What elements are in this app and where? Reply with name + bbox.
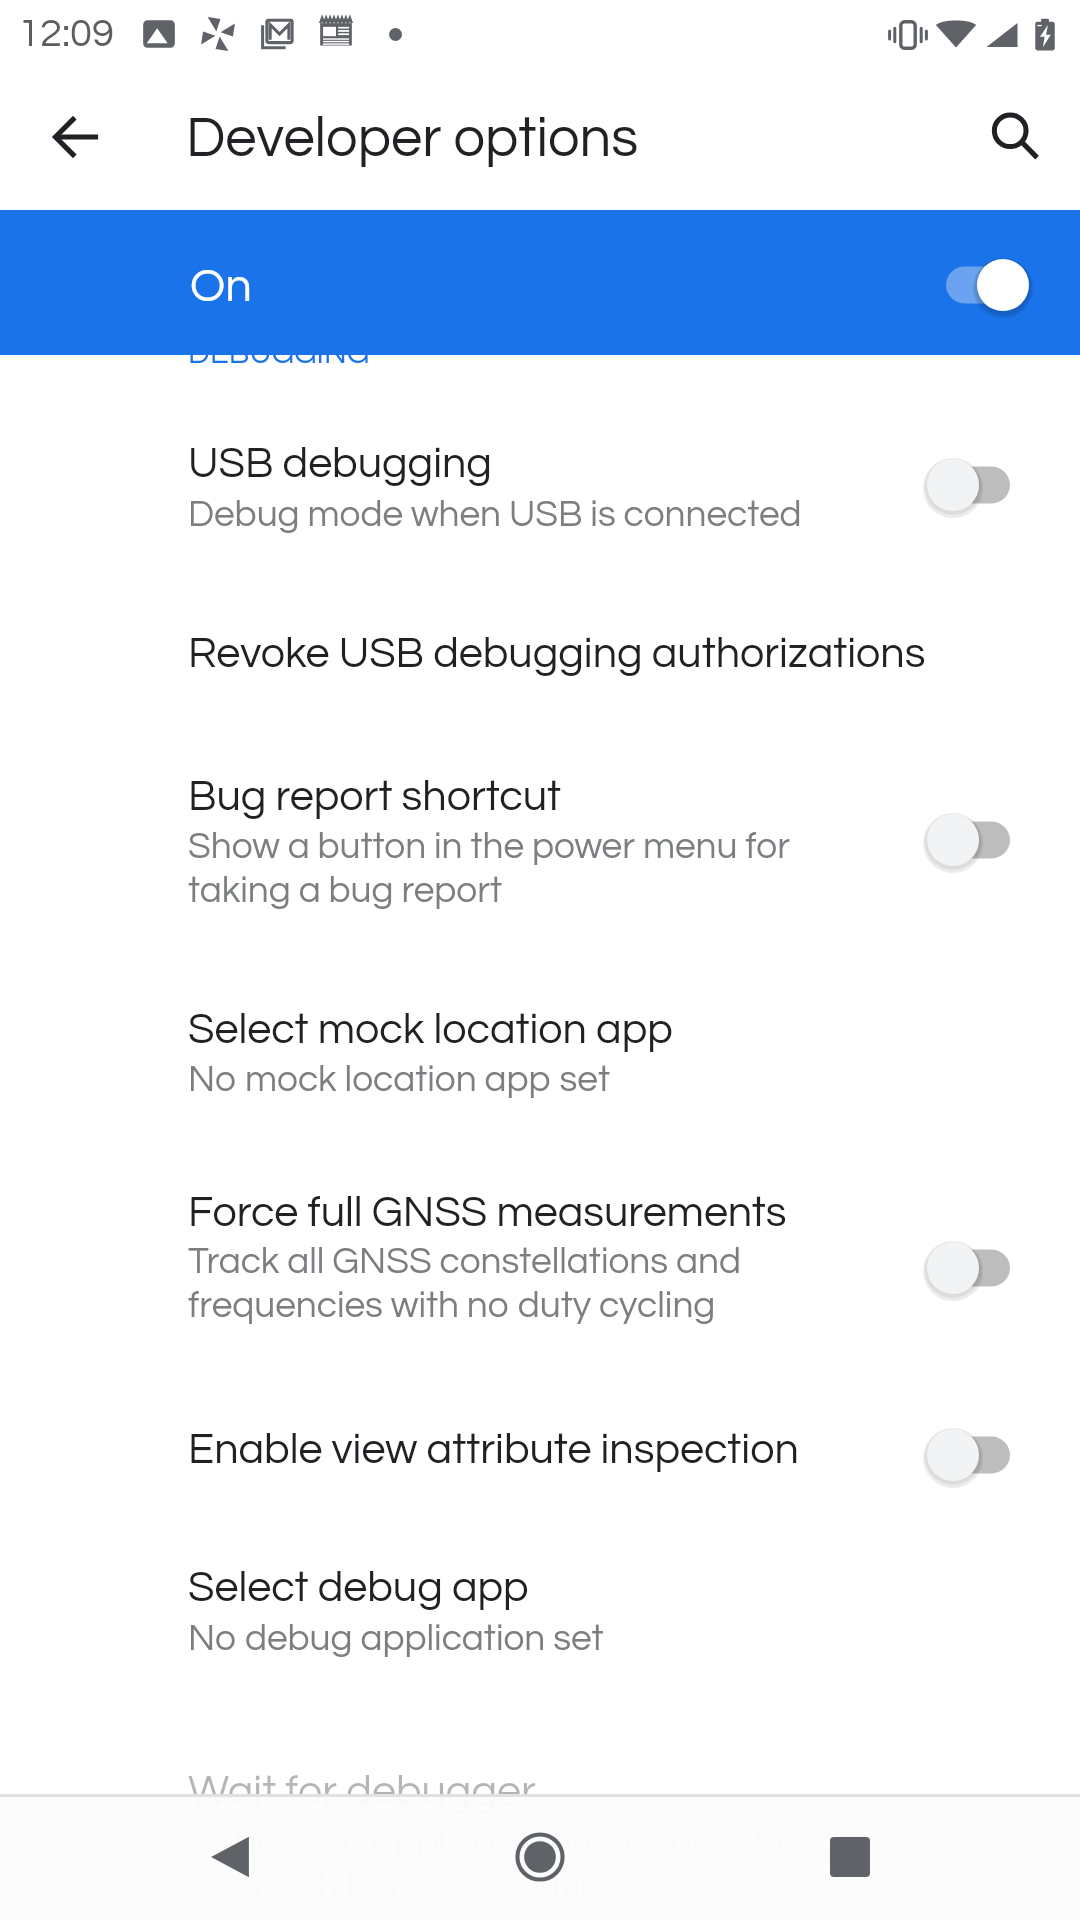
staticText: On [190,262,252,310]
button[interactable] [0,1150,1080,1345]
staticText: Track all GNSS constellations and freque… [188,1243,742,1325]
staticText: Bug report shortcut [188,775,562,819]
button[interactable]: Toggle on [930,245,1040,325]
staticText: Wait for debugger [188,1770,536,1814]
button[interactable]: Back [180,1807,280,1907]
button[interactable]: Home [490,1807,590,1907]
button[interactable]: Search [970,92,1060,182]
button[interactable] [0,1390,1080,1520]
staticText: No debug application set [188,1620,604,1658]
button[interactable]: Recent apps [800,1807,900,1907]
button[interactable] [0,735,1080,930]
staticText: Debug mode when USB is connected [188,496,802,534]
button[interactable] [0,400,1080,550]
staticText: Force full GNSS measurements [188,1191,787,1235]
button[interactable] [0,965,1080,1115]
button[interactable] [0,580,1080,720]
staticText: Revoke USB debugging authorizations [188,632,926,676]
button[interactable]: Toggle off [922,800,1062,880]
button[interactable]: Navigate up [32,92,122,182]
staticText: 12:09 [18,13,115,54]
button[interactable] [0,1715,1080,1910]
staticText: USB debugging [188,442,492,486]
staticText: Developer options [186,110,639,168]
button[interactable]: Toggle off [922,1415,1062,1495]
staticText: No mock location app set [188,1061,611,1099]
staticText: Enable view attribute inspection [188,1428,799,1472]
button[interactable]: Toggle off [922,445,1062,525]
button[interactable]: On [0,210,1080,355]
staticText: DEBUGGING [188,338,370,370]
staticText: Debugged application waits for debugger … [188,1824,875,1906]
button[interactable] [0,1525,1080,1675]
staticText: Select mock location app [188,1008,673,1052]
staticText: Show a button in the power menu for taki… [188,828,790,910]
button[interactable]: Toggle off [922,1228,1062,1308]
staticText: Select debug app [188,1566,529,1610]
